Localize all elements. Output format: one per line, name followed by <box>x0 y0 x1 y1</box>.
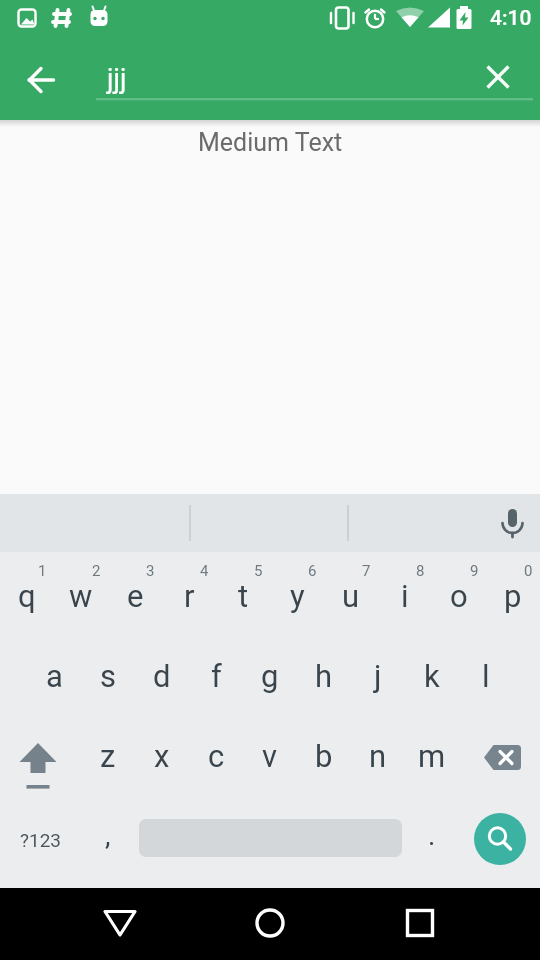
staticText: 5 <box>254 562 263 580</box>
button[interactable]: t <box>216 557 270 637</box>
button[interactable]: n <box>351 717 405 797</box>
button[interactable] <box>459 717 540 797</box>
button[interactable] <box>135 797 405 877</box>
staticText: o <box>450 578 468 614</box>
button[interactable] <box>459 797 540 877</box>
button[interactable]: d <box>135 637 189 717</box>
button[interactable]: r <box>162 557 216 637</box>
button[interactable] <box>360 888 540 960</box>
button[interactable] <box>484 494 540 552</box>
button[interactable] <box>474 36 540 120</box>
button[interactable]: z <box>81 717 135 797</box>
staticText: b <box>315 738 333 774</box>
staticText: m <box>418 738 446 774</box>
button[interactable]: s <box>81 637 135 717</box>
button[interactable]: l <box>459 637 513 717</box>
button[interactable]: g <box>243 637 297 717</box>
staticText: d <box>153 658 171 694</box>
button[interactable]: x <box>135 717 189 797</box>
staticText: a <box>46 658 63 694</box>
button[interactable]: q <box>0 557 54 637</box>
button[interactable]: m <box>405 717 459 797</box>
staticText: c <box>208 738 225 774</box>
button[interactable]: u <box>324 557 378 637</box>
button[interactable] <box>0 36 68 120</box>
staticText: Medium Text <box>198 128 343 157</box>
staticText: p <box>504 578 522 614</box>
staticText: l <box>482 658 490 694</box>
button[interactable]: k <box>405 637 459 717</box>
staticText: n <box>369 738 387 774</box>
staticText: , <box>105 819 111 852</box>
staticText: t <box>238 578 249 614</box>
button[interactable]: v <box>243 717 297 797</box>
staticText: g <box>261 658 279 694</box>
staticText: 1 <box>38 562 47 580</box>
button[interactable]: a <box>27 637 81 717</box>
button[interactable] <box>180 888 360 960</box>
button[interactable] <box>0 717 81 797</box>
staticText: j <box>374 658 382 694</box>
staticText: 6 <box>308 562 317 580</box>
staticText: r <box>184 578 195 614</box>
button[interactable]: e <box>108 557 162 637</box>
button[interactable]: h <box>297 637 351 717</box>
staticText: . <box>428 819 436 852</box>
staticText: v <box>262 738 278 774</box>
staticText: jjj <box>107 63 127 95</box>
staticText: ?123 <box>20 829 62 851</box>
staticText: 0 <box>524 562 533 580</box>
staticText: y <box>290 578 305 614</box>
staticText: 7 <box>362 562 371 580</box>
button[interactable]: f <box>189 637 243 717</box>
button[interactable]: y <box>270 557 324 637</box>
button[interactable]: , <box>81 797 135 877</box>
staticText: 3 <box>146 562 155 580</box>
button[interactable] <box>0 888 180 960</box>
button[interactable]: b <box>297 717 351 797</box>
staticText: z <box>100 738 116 774</box>
staticText: 8 <box>416 562 425 580</box>
staticText: 2 <box>92 562 101 580</box>
button[interactable]: j <box>351 637 405 717</box>
staticText: u <box>342 578 360 614</box>
button[interactable]: c <box>189 717 243 797</box>
staticText: i <box>401 578 409 614</box>
button[interactable]: . <box>405 797 459 877</box>
staticText: s <box>100 658 116 694</box>
button[interactable]: w <box>54 557 108 637</box>
staticText: 4:10 <box>490 6 532 31</box>
button[interactable]: p <box>486 557 540 637</box>
staticText: x <box>154 738 170 774</box>
staticText: w <box>69 578 93 614</box>
button[interactable]: o <box>432 557 486 637</box>
staticText: 4 <box>200 562 209 580</box>
staticText: h <box>315 658 333 694</box>
staticText: f <box>211 658 222 694</box>
staticText: k <box>424 658 440 694</box>
staticText: e <box>127 578 144 614</box>
button[interactable]: i <box>378 557 432 637</box>
button[interactable]: ?123 <box>0 797 81 877</box>
staticText: 9 <box>470 562 479 580</box>
staticText: q <box>18 578 36 614</box>
